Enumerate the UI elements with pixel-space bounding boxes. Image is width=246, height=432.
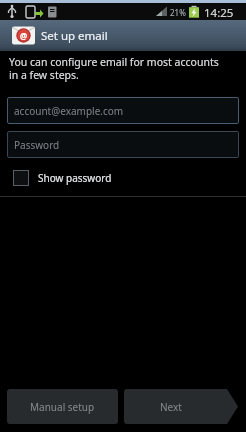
staticText: Password — [14, 138, 60, 152]
staticText: Set up email — [41, 28, 108, 44]
button[interactable]: Show password — [13, 168, 112, 188]
staticText: You can configure email for most account… — [9, 55, 219, 82]
button[interactable]: Manual setup — [7, 389, 118, 424]
staticText: 14:25 — [204, 5, 234, 21]
staticText: account@example.com — [14, 104, 124, 118]
staticText: @ — [20, 30, 28, 41]
staticText: 21% — [170, 7, 186, 18]
staticText: Manual setup — [30, 400, 95, 414]
button[interactable]: Password — [7, 131, 239, 158]
staticText: Next — [160, 400, 182, 414]
button[interactable]: Next — [124, 389, 238, 424]
staticText: Show password — [38, 171, 112, 185]
button[interactable]: account@example.com — [7, 97, 239, 124]
